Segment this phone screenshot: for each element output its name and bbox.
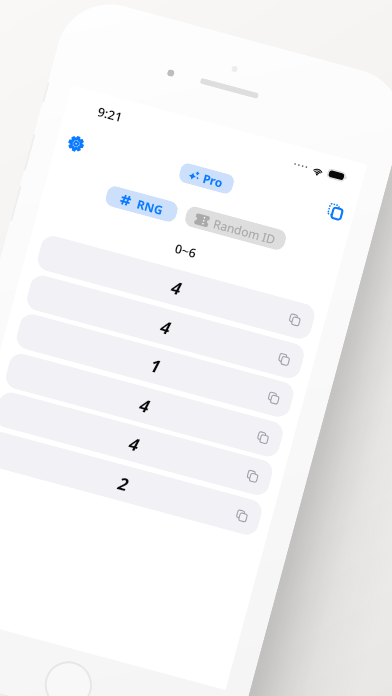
staticText: 2 [116,471,132,496]
button[interactable]: 4 [0,389,275,498]
staticText: 0~6 [173,240,198,261]
staticText: 9:21 [96,103,124,126]
staticText: Random ID [212,215,278,247]
button[interactable]: 4 [24,273,307,381]
button[interactable]: Settings [56,124,95,163]
button[interactable]: 4 [3,351,286,459]
button[interactable]: RNG [104,184,180,224]
button[interactable]: Pro [177,162,236,195]
button[interactable]: Copy all [316,193,354,231]
staticText: 4 [158,314,174,340]
staticText: 4 [169,275,185,300]
button[interactable]: 1 [14,311,296,420]
button[interactable]: 2 [0,429,265,538]
staticText: Pro [201,170,225,191]
button[interactable]: 4 [35,233,317,342]
button[interactable]: Random ID [183,205,288,252]
staticText: 4 [137,392,153,418]
staticText: RNG [135,196,165,218]
staticText: 1 [148,353,163,379]
staticText: 4 [126,431,142,457]
